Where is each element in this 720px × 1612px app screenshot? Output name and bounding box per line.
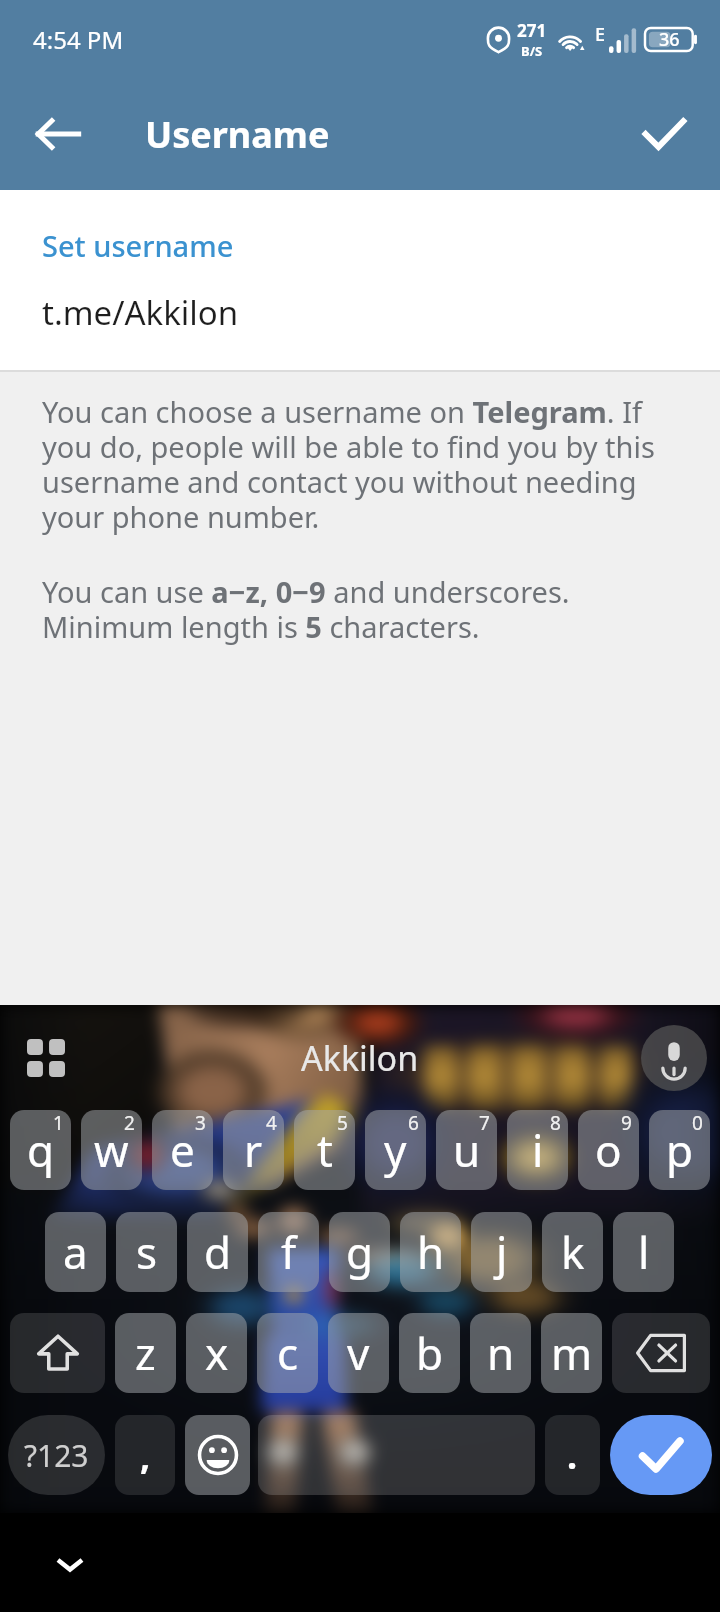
button[interactable]: Shift — [10, 1313, 105, 1393]
staticText: Set username — [42, 226, 234, 265]
button[interactable]: m — [541, 1313, 602, 1393]
staticText: g — [346, 1222, 374, 1282]
staticText: r — [244, 1120, 263, 1180]
button[interactable]: p — [649, 1110, 710, 1190]
staticText: s — [136, 1222, 158, 1282]
button[interactable]: Space — [258, 1415, 535, 1495]
button[interactable]: , — [115, 1415, 175, 1495]
button[interactable]: n — [470, 1313, 531, 1393]
staticText: You can use a−z, 0−9 and underscores. Mi… — [42, 572, 656, 647]
button[interactable]: k — [542, 1212, 603, 1292]
button[interactable]: o — [578, 1110, 639, 1190]
button[interactable]: h — [400, 1212, 461, 1292]
button[interactable]: s — [116, 1212, 177, 1292]
button[interactable]: t — [294, 1110, 355, 1190]
button[interactable]: v — [328, 1313, 389, 1393]
staticText: 36 — [659, 27, 680, 52]
staticText: y — [384, 1120, 407, 1180]
staticText: 1 — [53, 1110, 64, 1136]
staticText: 2 — [124, 1110, 135, 1136]
button[interactable]: b — [399, 1313, 460, 1393]
button[interactable]: ?123 — [8, 1415, 105, 1495]
button[interactable]: c — [257, 1313, 318, 1393]
staticText: t.me/Akkilon — [42, 290, 239, 335]
button[interactable]: Emoji — [185, 1415, 250, 1495]
staticText: p — [666, 1120, 694, 1180]
button[interactable]: y — [365, 1110, 426, 1190]
staticText: 8 — [550, 1110, 561, 1136]
staticText: ?123 — [24, 1435, 89, 1476]
button[interactable]: Back — [22, 98, 94, 170]
staticText: x — [205, 1323, 229, 1383]
button[interactable]: f — [258, 1212, 319, 1292]
button[interactable]: j — [471, 1212, 532, 1292]
staticText: b — [416, 1323, 444, 1383]
staticText: m — [551, 1323, 593, 1383]
button[interactable]: u — [436, 1110, 497, 1190]
staticText: , — [140, 1431, 151, 1480]
staticText: E — [595, 22, 606, 47]
button[interactable]: l — [613, 1212, 674, 1292]
button[interactable]: Voice input — [641, 1025, 707, 1091]
staticText: 7 — [479, 1110, 490, 1136]
staticText: 6 — [408, 1110, 419, 1136]
staticText: 0 — [692, 1110, 703, 1136]
staticText: v — [347, 1323, 370, 1383]
button[interactable]: i — [507, 1110, 568, 1190]
staticText: u — [453, 1120, 481, 1180]
button[interactable]: Keyboard menu — [10, 1022, 82, 1094]
staticText: c — [277, 1323, 299, 1383]
staticText: k — [561, 1222, 585, 1282]
staticText: Username — [145, 110, 330, 159]
staticText: 5 — [337, 1110, 348, 1136]
staticText: z — [135, 1323, 156, 1383]
staticText: B/S — [521, 42, 543, 60]
button[interactable]: Done — [628, 98, 700, 170]
staticText: n — [487, 1323, 515, 1383]
staticText: l — [638, 1222, 650, 1282]
button[interactable]: g — [329, 1212, 390, 1292]
button[interactable]: Enter — [610, 1415, 712, 1495]
staticText: Akkilon — [301, 1035, 419, 1081]
button[interactable]: Backspace — [612, 1313, 710, 1393]
button[interactable]: x — [186, 1313, 247, 1393]
button[interactable]: Hide keyboard — [34, 1527, 106, 1599]
button[interactable]: q — [10, 1110, 71, 1190]
staticText: j — [496, 1222, 508, 1282]
staticText: 3 — [195, 1110, 206, 1136]
button[interactable]: w — [81, 1110, 142, 1190]
button[interactable]: r — [223, 1110, 284, 1190]
staticText: i — [532, 1120, 544, 1180]
staticText: 4 — [266, 1110, 277, 1136]
button[interactable]: e — [152, 1110, 213, 1190]
staticText: a — [63, 1222, 88, 1282]
staticText: . — [567, 1431, 578, 1480]
staticText: 271 — [517, 19, 547, 42]
staticText: o — [595, 1120, 622, 1180]
button[interactable]: z — [115, 1313, 176, 1393]
staticText: h — [417, 1222, 445, 1282]
staticText: q — [27, 1120, 55, 1180]
staticText: 4:54 PM — [33, 23, 124, 56]
button[interactable]: . — [545, 1415, 600, 1495]
staticText: t — [317, 1120, 333, 1180]
button[interactable]: d — [187, 1212, 248, 1292]
staticText: e — [170, 1120, 195, 1180]
staticText: d — [204, 1222, 232, 1282]
staticText: f — [281, 1222, 297, 1282]
button[interactable]: a — [45, 1212, 106, 1292]
staticText: w — [94, 1120, 129, 1180]
staticText: 9 — [621, 1110, 632, 1136]
staticText: You can choose a username on Telegram. I… — [42, 392, 656, 537]
